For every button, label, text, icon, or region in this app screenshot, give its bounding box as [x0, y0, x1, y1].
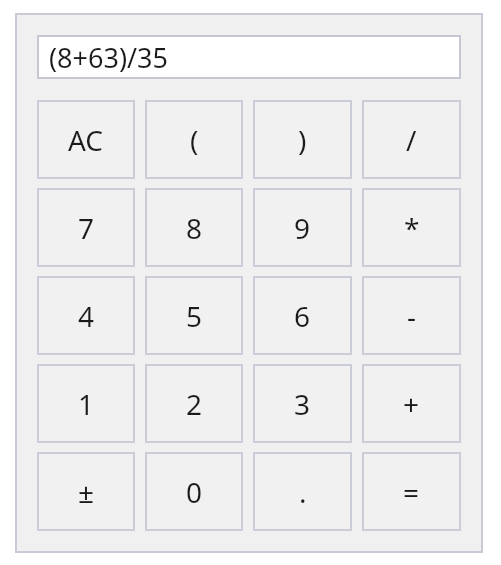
button[interactable]: = — [362, 452, 461, 531]
staticText: + — [403, 385, 420, 423]
button[interactable]: * — [362, 188, 461, 267]
button[interactable]: 5 — [145, 276, 243, 355]
button[interactable]: 8 — [145, 188, 243, 267]
button[interactable]: . — [253, 452, 352, 531]
staticText: 6 — [294, 297, 311, 335]
staticText: 3 — [294, 385, 311, 423]
button[interactable]: - — [362, 276, 461, 355]
button[interactable]: + — [362, 364, 461, 443]
staticText: 0 — [186, 473, 203, 511]
button[interactable]: 9 — [253, 188, 352, 267]
staticText: * — [404, 209, 420, 247]
staticText: AC — [68, 121, 104, 159]
button[interactable]: (8+63)/35 — [37, 35, 461, 79]
button[interactable]: 4 — [37, 276, 135, 355]
staticText: 2 — [186, 385, 203, 423]
staticText: 7 — [78, 209, 95, 247]
staticText: = — [403, 473, 420, 511]
button[interactable]: ( — [145, 100, 243, 179]
button[interactable]: 6 — [253, 276, 352, 355]
staticText: 1 — [78, 385, 95, 423]
button[interactable]: AC — [37, 100, 135, 179]
staticText: 9 — [294, 209, 311, 247]
button[interactable]: 3 — [253, 364, 352, 443]
staticText: . — [299, 473, 307, 511]
staticText: (8+63)/35 — [49, 39, 168, 76]
button[interactable]: 7 — [37, 188, 135, 267]
staticText: 8 — [186, 209, 203, 247]
button[interactable]: 2 — [145, 364, 243, 443]
button[interactable]: / — [362, 100, 461, 179]
staticText: 4 — [78, 297, 95, 335]
staticText: ( — [190, 121, 199, 159]
staticText: 5 — [186, 297, 203, 335]
button[interactable]: ± — [37, 452, 135, 531]
staticText: - — [407, 297, 417, 335]
staticText: ± — [78, 473, 95, 511]
button[interactable]: 1 — [37, 364, 135, 443]
staticText: ) — [298, 121, 307, 159]
button[interactable]: 0 — [145, 452, 243, 531]
button[interactable]: ) — [253, 100, 352, 179]
staticText: / — [406, 121, 417, 159]
